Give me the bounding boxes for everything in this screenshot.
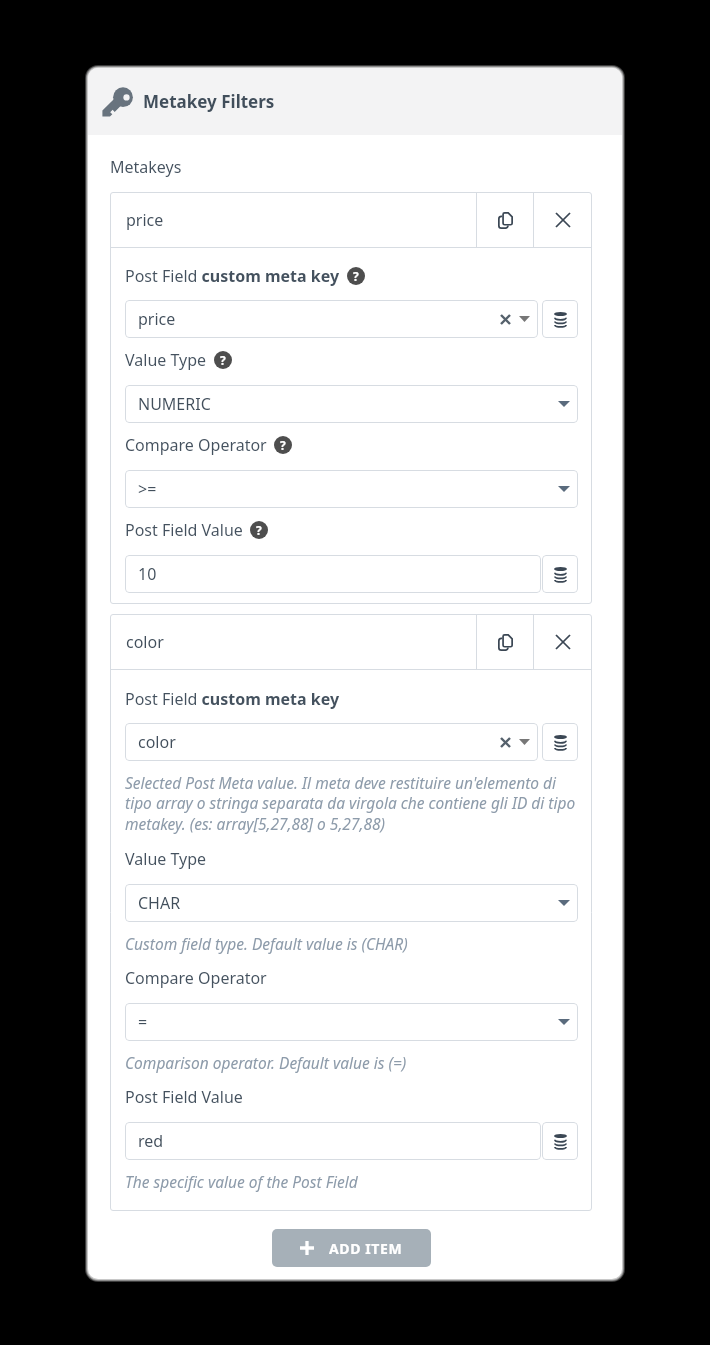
- button[interactable]: Remove item: [534, 193, 591, 247]
- button[interactable]: Remove item: [534, 615, 591, 669]
- button[interactable]: ADD ITEM: [272, 1229, 431, 1267]
- button[interactable]: price: [125, 300, 538, 338]
- button[interactable]: Browse values: [542, 555, 578, 593]
- staticText: Selected Post Meta value. Il meta deve r…: [125, 772, 578, 835]
- button[interactable]: CHAR: [125, 884, 578, 922]
- staticText: CHAR: [138, 892, 181, 914]
- button[interactable]: color: [111, 615, 476, 669]
- button[interactable]: =: [125, 1003, 578, 1041]
- staticText: Post Field Value: [125, 1086, 243, 1107]
- staticText: price: [126, 209, 164, 231]
- button[interactable]: Browse values: [542, 300, 578, 338]
- staticText: ?: [353, 268, 359, 284]
- staticText: Value Type: [125, 349, 207, 370]
- staticText: Compare Operator: [125, 967, 267, 988]
- staticText: color: [138, 731, 176, 753]
- button[interactable]: NUMERIC: [125, 385, 578, 423]
- staticText: ADD ITEM: [329, 1239, 403, 1258]
- staticText: Compare Operator: [125, 434, 267, 455]
- button[interactable]: color: [125, 723, 538, 761]
- staticText: =: [138, 1011, 148, 1033]
- button[interactable]: Duplicate item: [477, 193, 533, 247]
- staticText: Post Field Value: [125, 519, 243, 540]
- staticText: Post Field custom meta key: [125, 265, 340, 286]
- staticText: ?: [280, 437, 286, 453]
- staticText: ?: [256, 522, 262, 538]
- staticText: color: [126, 631, 164, 653]
- button[interactable]: Browse values: [542, 723, 578, 761]
- button[interactable]: price: [111, 193, 476, 247]
- staticText: Value Type: [125, 848, 207, 869]
- button[interactable]: red: [125, 1122, 541, 1160]
- staticText: The specific value of the Post Field: [125, 1171, 358, 1192]
- staticText: >=: [138, 478, 157, 500]
- staticText: Metakey Filters: [143, 90, 275, 113]
- staticText: Comparison operator. Default value is (=…: [125, 1052, 407, 1073]
- staticText: NUMERIC: [138, 393, 211, 415]
- button[interactable]: Duplicate item: [477, 615, 533, 669]
- staticText: ?: [220, 352, 226, 368]
- staticText: Metakeys: [110, 156, 182, 178]
- staticText: 10: [138, 563, 157, 585]
- button[interactable]: 10: [125, 555, 541, 593]
- staticText: price: [138, 308, 176, 330]
- button[interactable]: Browse values: [542, 1122, 578, 1160]
- button[interactable]: >=: [125, 470, 578, 508]
- staticText: red: [138, 1130, 164, 1152]
- staticText: Custom field type. Default value is (CHA…: [125, 933, 408, 954]
- staticText: Post Field custom meta key: [125, 688, 340, 709]
